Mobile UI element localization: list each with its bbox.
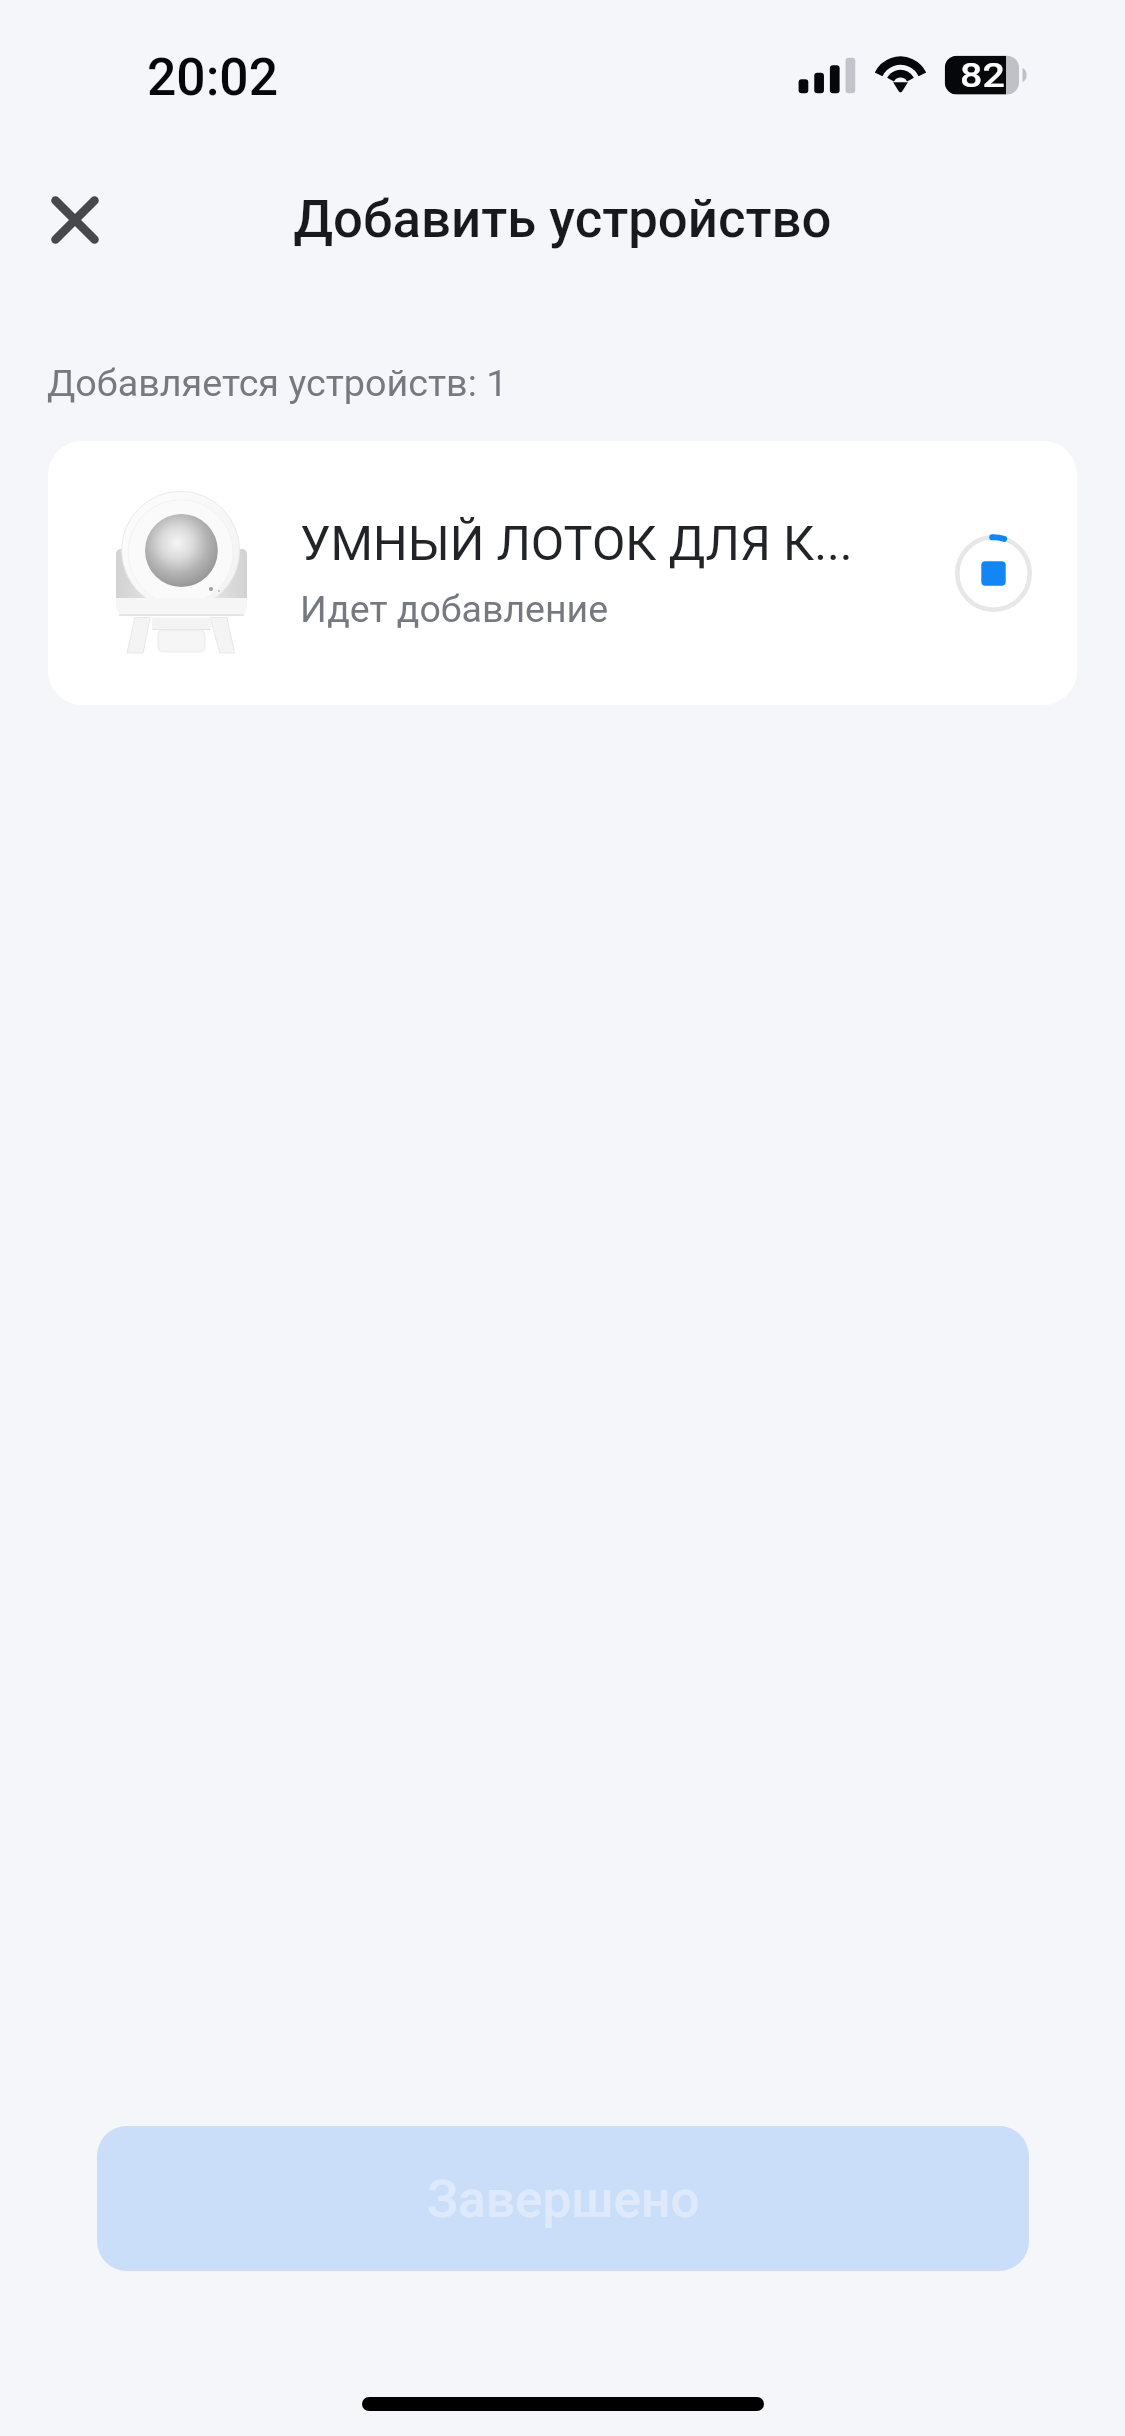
staticText: 82: [960, 55, 1005, 95]
button[interactable]: УМНЫЙ ЛОТОК ДЛЯ К...: [48, 441, 1077, 705]
staticText: Добавляется устройств: 1: [47, 361, 508, 405]
staticText: Идет добавление: [300, 587, 609, 631]
button[interactable]: Close: [27, 172, 123, 268]
staticText: УМНЫЙ ЛОТОК ДЛЯ К...: [300, 515, 853, 572]
button[interactable]: Завершено: [97, 2126, 1029, 2271]
staticText: Добавить устройство: [293, 188, 832, 250]
staticText: 20:02: [147, 47, 278, 107]
staticText: Завершено: [427, 2169, 700, 2229]
